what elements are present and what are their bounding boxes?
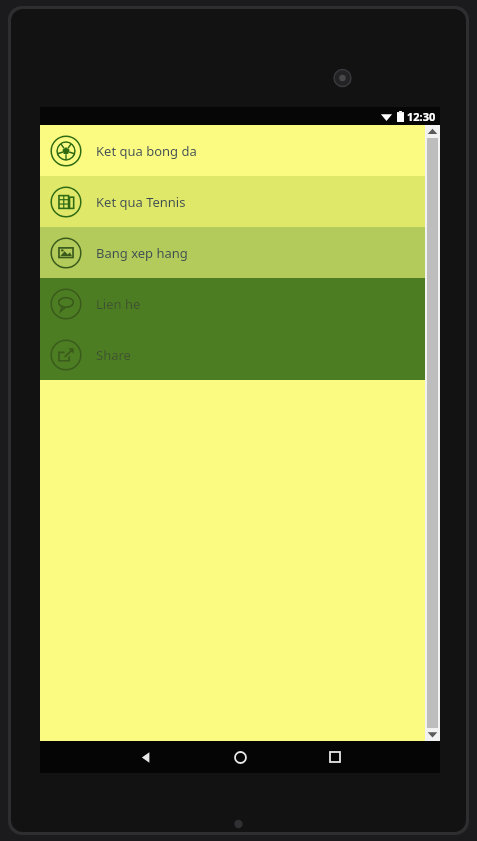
button[interactable]: Lien he [40,278,425,329]
staticText: Ket qua bong da [96,142,197,160]
staticText: Ket qua Tennis [96,193,186,211]
staticText: 12:30 [407,109,436,124]
button[interactable]: Recent apps [318,741,352,773]
button[interactable]: Ket qua Tennis [40,176,425,227]
button[interactable]: Bang xep hang [40,227,425,278]
staticText: Share [96,346,131,364]
button[interactable]: Share [40,329,425,380]
staticText: Bang xep hang [96,244,188,262]
button[interactable]: Ket qua bong da [40,125,425,176]
button[interactable]: Back [128,741,162,773]
button[interactable]: Home [223,741,257,773]
staticText: Lien he [96,295,141,313]
